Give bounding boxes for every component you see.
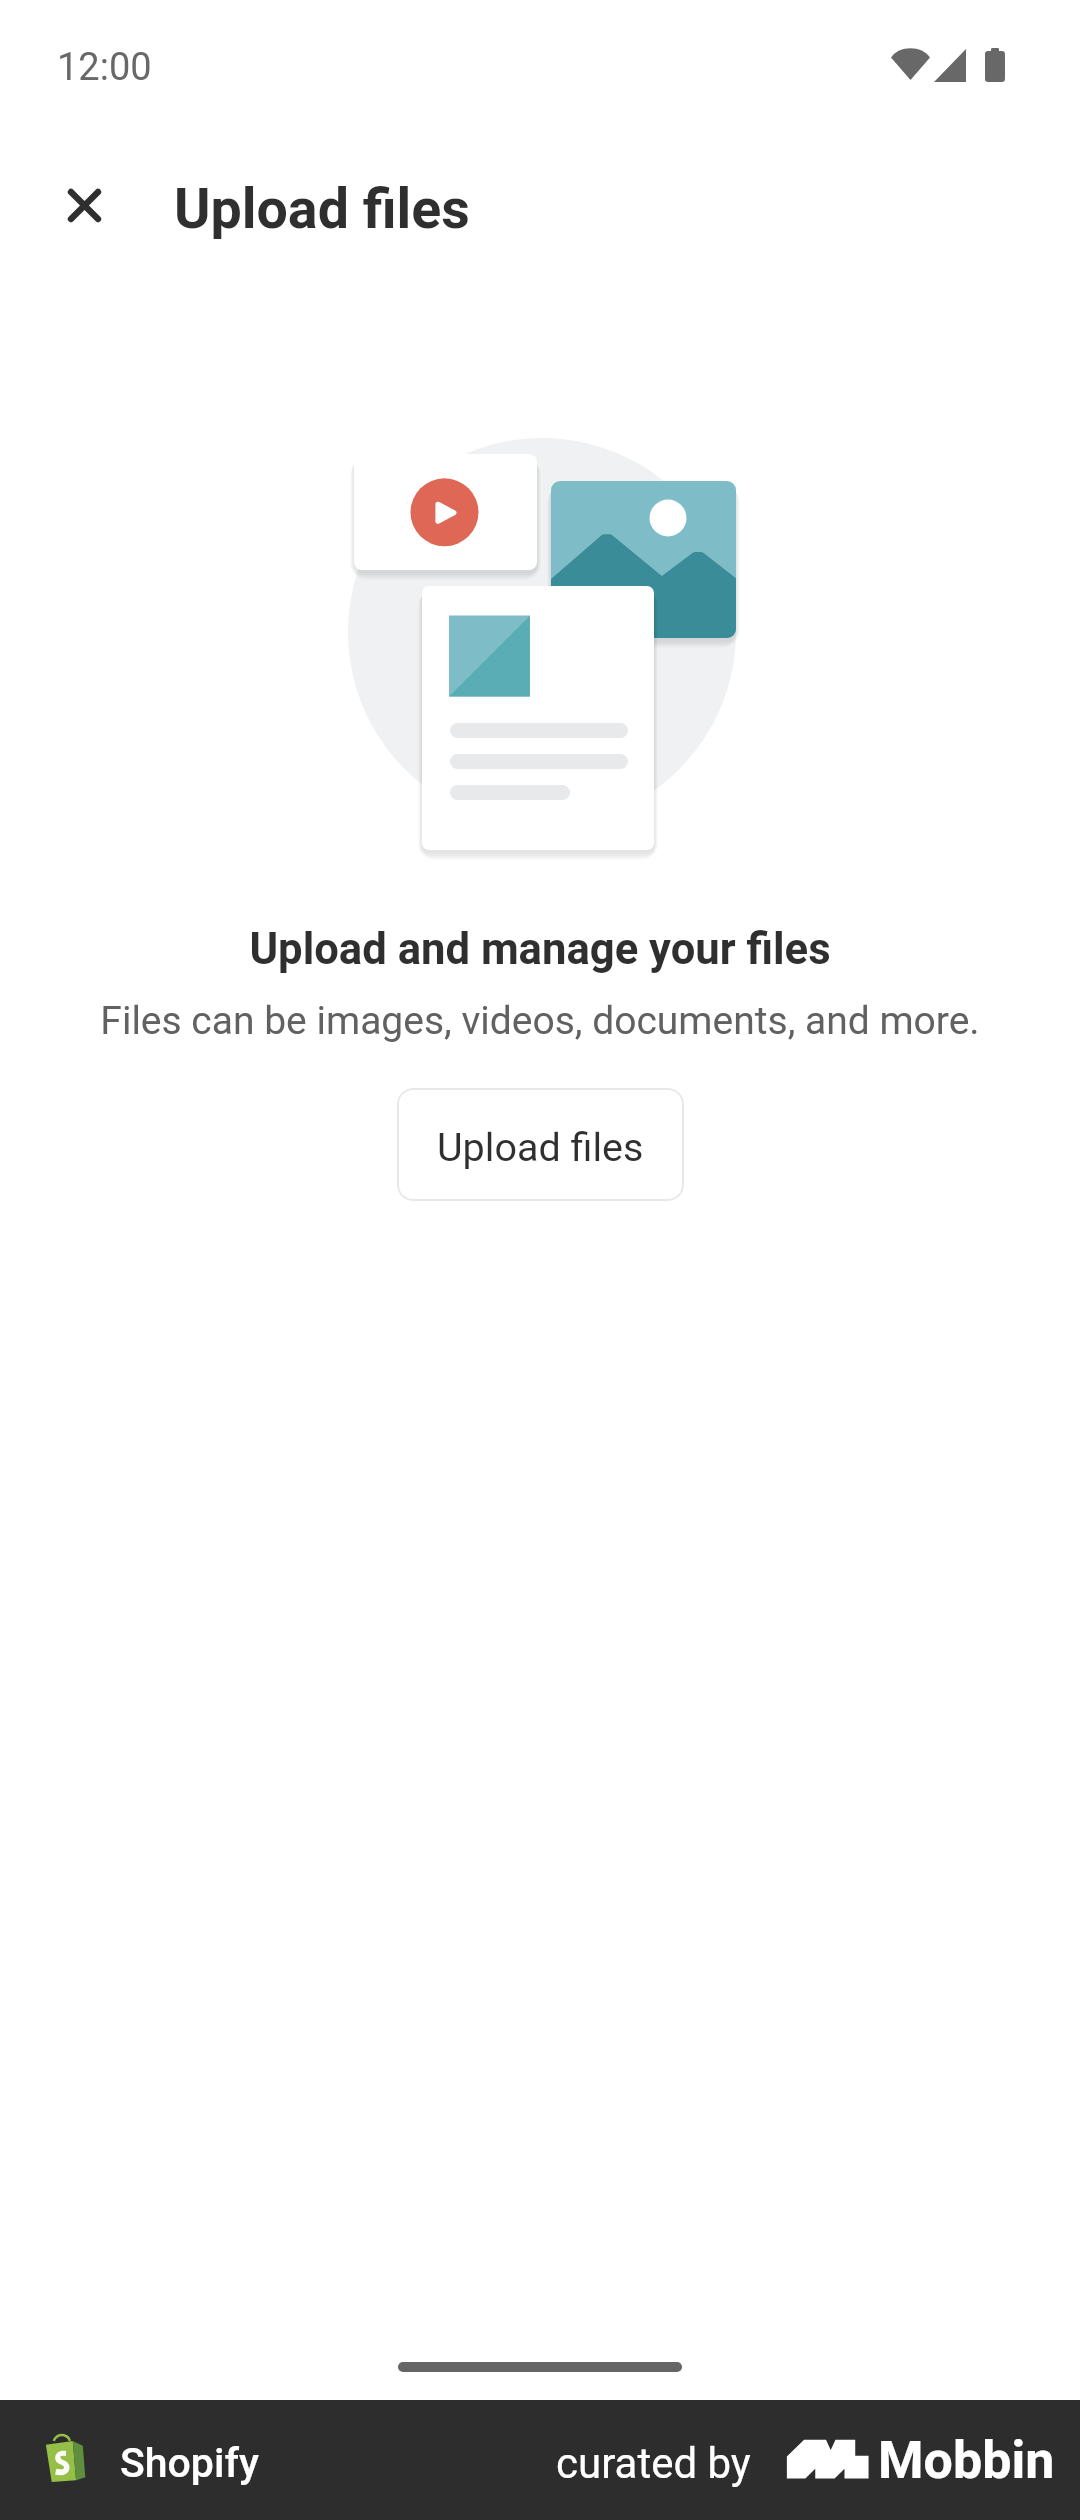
button[interactable]: Upload files [397,1088,684,1201]
staticText: Mobbin [878,2430,1055,2491]
staticText: Shopify [120,2439,259,2487]
staticText: curated by [556,2439,751,2488]
staticText: Upload and manage your files [0,924,1080,975]
staticText: Upload files [174,177,470,242]
staticText: 12:00 [57,45,152,90]
staticText: Files can be images, videos, documents, … [0,998,1080,1044]
staticText: Upload files [437,1124,644,1170]
button[interactable]: Close [28,149,140,261]
